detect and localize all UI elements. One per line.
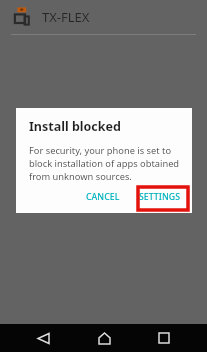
staticText: For security, your phone is set to block… <box>29 144 180 183</box>
button[interactable]: TX-FLEX <box>0 0 207 34</box>
button[interactable]: Back <box>25 324 61 352</box>
staticText: SETTINGS <box>139 191 180 203</box>
button[interactable]: Recent apps <box>146 324 182 352</box>
staticText: TX-FLEX <box>42 8 90 26</box>
button[interactable]: CANCEL <box>79 185 127 209</box>
staticText: CANCEL <box>86 191 120 203</box>
button[interactable]: Home <box>86 324 122 352</box>
button[interactable]: SETTINGS <box>132 185 187 209</box>
staticText: Install blocked <box>29 118 121 135</box>
